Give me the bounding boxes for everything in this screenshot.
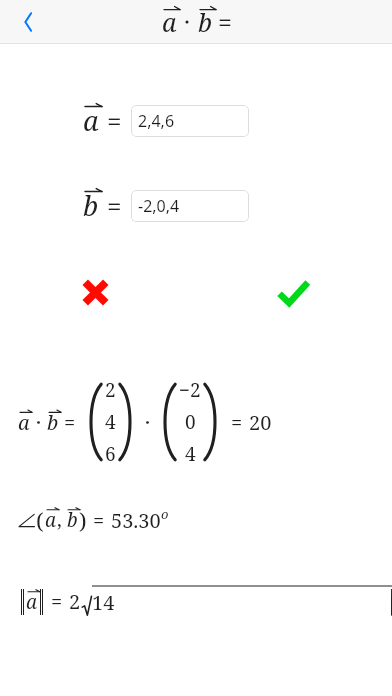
button[interactable]: Clear	[72, 269, 118, 315]
staticText: a	[162, 5, 177, 39]
staticText: 2	[105, 377, 116, 403]
button[interactable]: Calculate	[270, 269, 316, 315]
staticText: =	[51, 588, 63, 615]
staticText: a	[83, 102, 99, 139]
staticText: 0	[185, 409, 196, 435]
staticText: a	[26, 589, 38, 615]
staticText: 53.30	[111, 507, 161, 534]
staticText: )	[79, 505, 87, 535]
staticText: =	[93, 507, 105, 534]
staticText: 2,4,6	[138, 110, 175, 132]
staticText: (	[36, 505, 44, 535]
staticText: =	[107, 103, 122, 138]
staticText: =	[64, 409, 76, 436]
staticText: 4	[185, 441, 196, 467]
staticText: ,	[57, 507, 62, 533]
staticText: 2	[69, 588, 81, 615]
staticText: b	[83, 187, 99, 224]
staticText: 4	[105, 409, 116, 435]
staticText: =	[107, 188, 122, 223]
button[interactable]: -2,0,4	[131, 190, 249, 222]
staticText: b	[198, 5, 213, 39]
staticText: o	[161, 505, 169, 523]
staticText: a	[45, 507, 57, 533]
staticText: 20	[249, 409, 272, 436]
staticText: b	[47, 409, 59, 436]
staticText: =	[231, 409, 243, 436]
button[interactable]: Back	[6, 0, 50, 43]
staticText: −2	[179, 377, 201, 403]
staticText: =	[218, 5, 232, 39]
staticText: a	[18, 409, 30, 436]
staticText: -2,0,4	[138, 195, 180, 217]
button[interactable]: 2,4,6	[131, 105, 249, 137]
staticText: b	[67, 507, 78, 533]
staticText: 14	[92, 589, 115, 616]
staticText: 6	[105, 441, 116, 467]
